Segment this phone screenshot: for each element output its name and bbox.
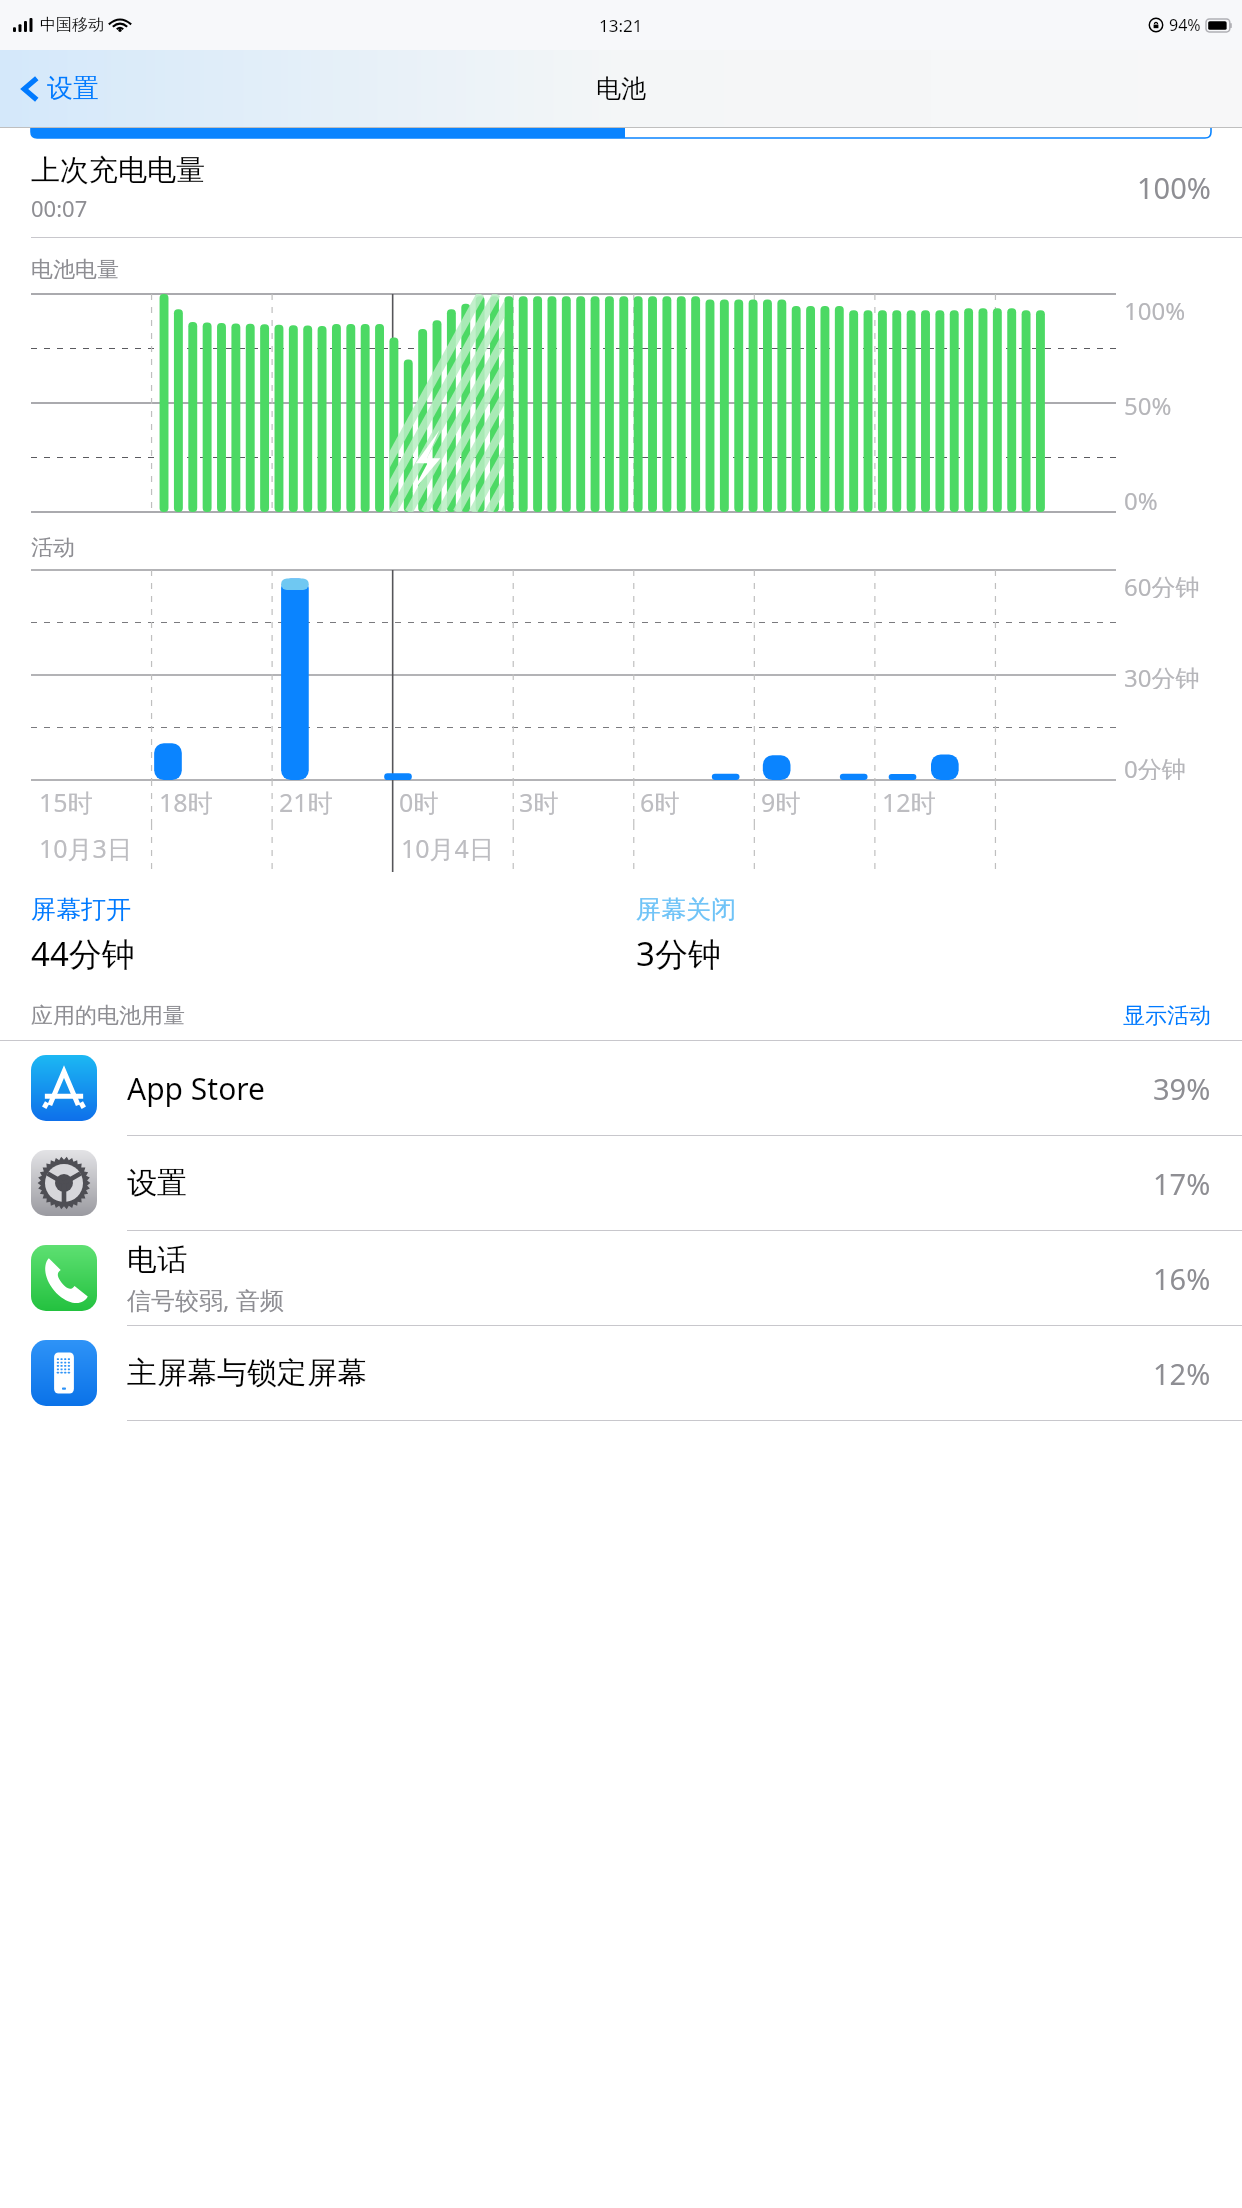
staticText: 18时 <box>159 785 213 819</box>
button[interactable]: 上次充电电量 <box>0 138 1242 237</box>
staticText: App Store <box>127 1068 266 1109</box>
staticText: 12% <box>1153 1354 1211 1393</box>
button[interactable]: 设置 <box>18 66 103 111</box>
staticText: 电池 <box>596 73 646 104</box>
staticText: 3时 <box>519 785 559 819</box>
staticText: 21时 <box>279 785 333 819</box>
staticText: 电池电量 <box>31 256 119 284</box>
staticText: 6时 <box>640 785 680 819</box>
staticText: 0时 <box>399 785 439 819</box>
staticText: 39% <box>1153 1069 1211 1108</box>
staticText: 设置 <box>127 1164 187 1202</box>
button[interactable]: 设置 <box>0 1136 1242 1231</box>
staticText: 60分钟 <box>1124 570 1200 598</box>
staticText: 设置 <box>47 72 99 105</box>
staticText: 9时 <box>761 785 801 819</box>
staticText: 10月3日 <box>39 831 132 865</box>
staticText: 中国移动 <box>40 15 104 35</box>
staticText: 电话 <box>127 1241 187 1279</box>
staticText: 上次充电电量 <box>31 152 205 189</box>
button[interactable]: 电话 <box>0 1231 1242 1326</box>
staticText: 0分钟 <box>1124 752 1186 780</box>
staticText: 信号较弱, 音频 <box>127 1283 284 1316</box>
staticText: 10月4日 <box>401 831 494 865</box>
staticText: 30分钟 <box>1124 661 1200 689</box>
staticText: 应用的电池用量 <box>31 1002 1123 1030</box>
staticText: 50% <box>1124 389 1172 417</box>
staticText: 15时 <box>39 785 93 819</box>
staticText: 12时 <box>882 785 936 819</box>
staticText: 显示活动 <box>1123 1002 1211 1030</box>
staticText: 屏幕关闭 <box>636 894 736 925</box>
staticText: 13:21 <box>599 14 643 37</box>
staticText: 00:07 <box>31 193 88 223</box>
staticText: 17% <box>1153 1164 1211 1203</box>
staticText: 主屏幕与锁定屏幕 <box>127 1354 367 1392</box>
button[interactable]: 主屏幕与锁定屏幕 <box>0 1326 1242 1421</box>
staticText: 3分钟 <box>636 931 721 976</box>
staticText: 屏幕打开 <box>31 894 131 925</box>
button[interactable]: 显示活动 <box>1123 1002 1211 1030</box>
staticText: 44分钟 <box>31 931 135 976</box>
staticText: 100% <box>1137 168 1211 207</box>
staticText: 16% <box>1153 1259 1211 1298</box>
button[interactable]: App Store <box>0 1041 1242 1136</box>
staticText: 94% <box>1169 14 1201 36</box>
staticText: 100% <box>1124 294 1186 322</box>
staticText: 活动 <box>31 534 75 562</box>
staticText: 0% <box>1124 484 1158 512</box>
